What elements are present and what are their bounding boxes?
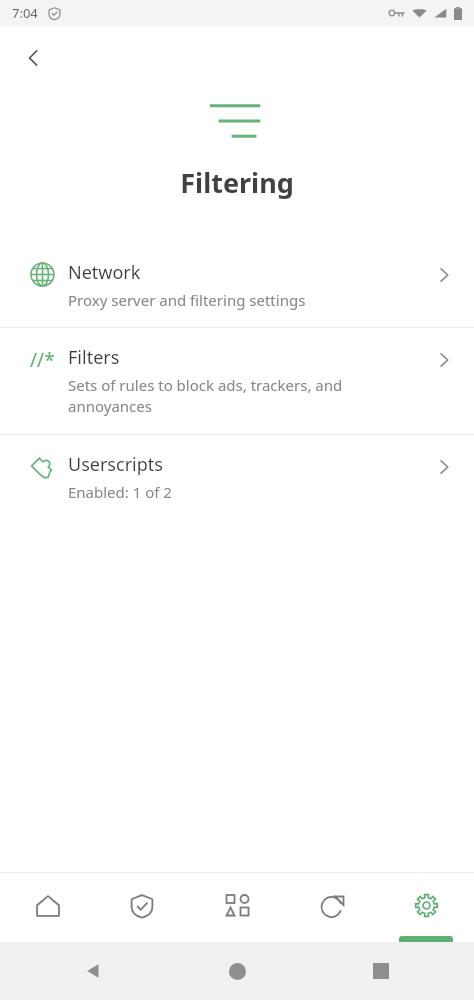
button[interactable]: Recents [331,942,431,1000]
staticText: Filters [68,345,120,370]
staticText: Enabled: 1 of 2 [68,482,172,502]
staticText: Proxy server and filtering settings [68,290,306,310]
button[interactable]: Settings [379,873,473,942]
button[interactable]: Apps [190,873,284,942]
staticText: 7:04 [12,4,38,22]
button[interactable]: Protection [95,873,189,942]
button[interactable]: Statistics [285,873,379,942]
button[interactable]: Back [12,36,56,80]
button[interactable]: //* [0,328,474,434]
staticText: Sets of rules to block ads, trackers, an… [68,375,418,417]
button[interactable]: Userscripts [0,435,474,519]
button[interactable]: Home [187,942,287,1000]
button[interactable]: Network [0,243,474,327]
staticText: Network [68,260,141,285]
staticText: Filtering [0,164,474,201]
button[interactable]: Back [44,942,144,1000]
button[interactable]: Home [1,873,95,942]
staticText: //* [30,347,55,373]
staticText: Userscripts [68,452,163,477]
